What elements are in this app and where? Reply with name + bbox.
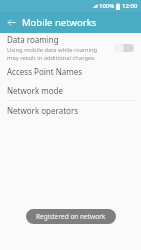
staticText: Network operators (7, 105, 79, 116)
staticText: Network mode (7, 85, 64, 96)
button[interactable]: Network operators (0, 101, 141, 120)
button[interactable]: Access Point Names (0, 62, 141, 81)
staticText: 100% (99, 2, 115, 10)
staticText: Access Point Names (7, 66, 83, 77)
staticText: Data roaming (7, 34, 59, 45)
button[interactable]: Network mode (0, 81, 141, 100)
staticText: Mobile networks (22, 16, 97, 29)
button[interactable]: Data roaming toggle, off (113, 40, 135, 56)
button[interactable]: Data roaming (0, 33, 141, 62)
staticText: Registered on network (36, 212, 106, 221)
button[interactable]: Navigate up (5, 16, 18, 29)
staticText: 12:00 (122, 2, 138, 10)
staticText: Using mobile data while roaming may resu… (7, 46, 110, 62)
